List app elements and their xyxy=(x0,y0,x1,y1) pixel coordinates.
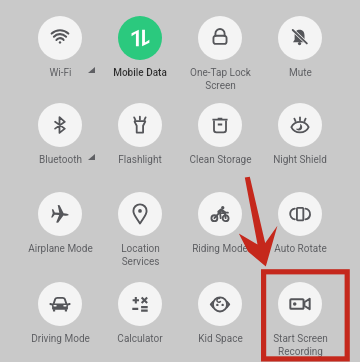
staticText: Auto Rotate xyxy=(274,243,327,255)
button[interactable]: Wi-Fi xyxy=(20,16,100,96)
button[interactable]: Driving Mode xyxy=(20,282,100,362)
button[interactable]: Mobile Data xyxy=(100,16,180,96)
staticText: One-Tap Lock Screen xyxy=(190,67,251,91)
staticText: Driving Mode xyxy=(31,333,90,345)
button[interactable]: Flashlight xyxy=(100,103,180,183)
staticText: Mobile Data xyxy=(113,67,167,79)
staticText: Mute xyxy=(289,67,312,79)
staticText: Kid Space xyxy=(198,333,243,345)
button[interactable]: Bluetooth xyxy=(20,103,100,183)
button[interactable]: Calculator xyxy=(100,282,180,362)
button[interactable]: Start Screen Recording xyxy=(260,282,340,362)
button[interactable]: Mute xyxy=(260,16,340,96)
button[interactable]: Location Services xyxy=(100,192,180,272)
staticText: Riding Mode xyxy=(192,243,248,255)
staticText: Flashlight xyxy=(118,154,162,166)
staticText: Bluetooth xyxy=(39,154,82,166)
button[interactable]: Clean Storage xyxy=(180,103,260,183)
staticText: Clean Storage xyxy=(189,154,252,166)
staticText: Location Services xyxy=(121,243,160,267)
button[interactable]: One-Tap Lock Screen xyxy=(180,16,260,96)
button[interactable]: Riding Mode xyxy=(180,192,260,272)
staticText: Calculator xyxy=(117,333,163,345)
staticText: Wi-Fi xyxy=(49,67,72,79)
staticText: Night Shield xyxy=(273,154,327,166)
staticText: Airplane Mode xyxy=(28,243,93,255)
button[interactable]: Kid Space xyxy=(180,282,260,362)
button[interactable]: Night Shield xyxy=(260,103,340,183)
button[interactable]: Airplane Mode xyxy=(20,192,100,272)
staticText: Start Screen Recording xyxy=(273,333,328,357)
button[interactable]: Auto Rotate xyxy=(260,192,340,272)
